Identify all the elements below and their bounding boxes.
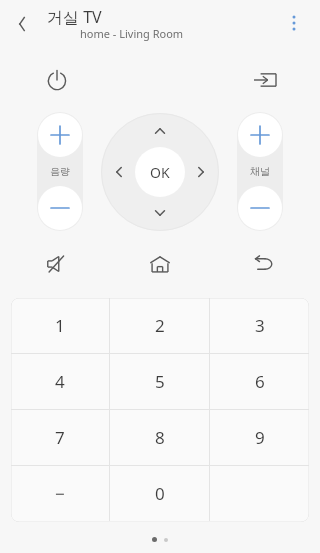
staticText: − (55, 482, 65, 505)
staticText: 2 (155, 314, 165, 337)
button[interactable]: Channel down (238, 186, 282, 230)
button[interactable]: Up (142, 113, 178, 149)
staticText: 8 (155, 426, 165, 449)
staticText: 음량 (50, 165, 70, 178)
button[interactable]: − (11, 466, 109, 521)
button[interactable]: Power (38, 61, 76, 99)
staticText: 9 (255, 426, 265, 449)
button[interactable]: Back (244, 245, 282, 283)
button[interactable]: 0 (110, 466, 209, 521)
button[interactable]: Right (183, 154, 219, 190)
button[interactable]: 8 (110, 410, 209, 465)
staticText: 거실 TV (47, 6, 102, 28)
button[interactable]: Left (101, 154, 137, 190)
button[interactable]: Channel up (238, 113, 282, 157)
button[interactable]: Mute (38, 245, 76, 283)
button[interactable]: Input source (246, 61, 284, 99)
staticText: 0 (155, 482, 165, 505)
button[interactable]: Back (6, 8, 38, 40)
button[interactable]: Volume up (38, 113, 82, 157)
button[interactable]: 2 (110, 298, 209, 353)
button[interactable]: Home (141, 245, 179, 283)
button[interactable]: 9 (210, 410, 309, 465)
button[interactable]: 6 (210, 354, 309, 409)
button[interactable]: OK (135, 147, 185, 197)
staticText: 7 (55, 426, 65, 449)
button[interactable]: 5 (110, 354, 209, 409)
button[interactable]: More options (278, 7, 310, 39)
button[interactable]: 1 (11, 298, 109, 353)
staticText: 4 (55, 370, 65, 393)
staticText: 6 (255, 370, 265, 393)
staticText: OK (150, 163, 170, 182)
staticText: 1 (55, 314, 65, 337)
button[interactable]: 4 (11, 354, 109, 409)
staticText: 3 (255, 314, 265, 337)
staticText: 5 (155, 370, 165, 393)
button[interactable]: Volume down (38, 186, 82, 230)
staticText: home - Living Room (80, 26, 184, 41)
button[interactable]: Down (142, 195, 178, 231)
button[interactable]: 7 (11, 410, 109, 465)
staticText: 채널 (250, 165, 270, 178)
button[interactable]: 3 (210, 298, 309, 353)
